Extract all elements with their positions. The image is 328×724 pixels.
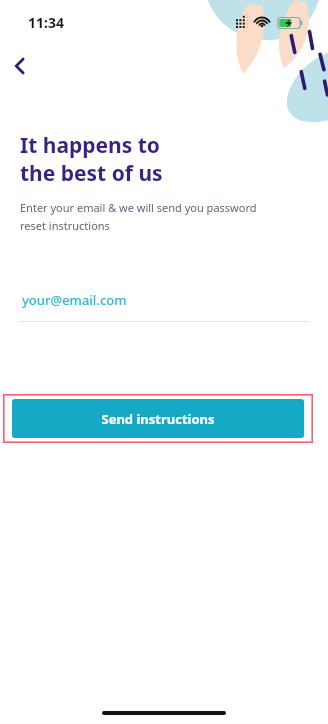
staticText: 11:34	[28, 13, 64, 32]
staticText: Enter your email & we will send you pass…	[20, 200, 257, 233]
staticText: Send instructions	[101, 410, 215, 428]
staticText: It happens to the best of us	[20, 131, 163, 187]
staticText: your@email.com	[22, 291, 127, 309]
button[interactable]: Send instructions	[12, 399, 304, 438]
button[interactable]: Back	[4, 50, 36, 82]
button[interactable]: your@email.com	[18, 286, 310, 322]
